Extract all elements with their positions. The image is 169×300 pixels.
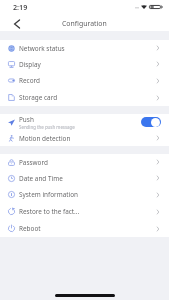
button[interactable]: Date and Time <box>0 170 169 186</box>
button[interactable]: Password <box>0 154 169 170</box>
button[interactable]: Back <box>0 15 26 31</box>
staticText: Record <box>19 76 40 85</box>
staticText: Password <box>19 158 48 167</box>
button[interactable]: Storage card <box>0 89 169 106</box>
staticText: Storage card <box>19 93 58 102</box>
button[interactable]: Restore to the fact... <box>0 203 169 220</box>
staticText: Date and Time <box>19 174 63 183</box>
staticText: Sending the push message <box>19 124 75 130</box>
staticText: Reboot <box>19 224 41 233</box>
button[interactable]: Push toggle <box>141 117 161 127</box>
button[interactable]: Network status <box>0 40 169 56</box>
staticText: System information <box>19 190 79 199</box>
button[interactable]: Reboot <box>0 220 169 237</box>
staticText: Push <box>19 115 34 124</box>
staticText: Display <box>19 60 41 69</box>
button[interactable]: Push <box>0 114 169 130</box>
staticText: Restore to the fact... <box>19 207 80 216</box>
staticText: Motion detection <box>19 134 71 143</box>
button[interactable]: Display <box>0 56 169 72</box>
staticText: Configuration <box>62 19 107 28</box>
button[interactable]: Record <box>0 72 169 89</box>
button[interactable]: System information <box>0 186 169 203</box>
staticText: 2:19 <box>13 2 28 12</box>
staticText: Network status <box>19 44 65 53</box>
button[interactable]: Motion detection <box>0 130 169 146</box>
